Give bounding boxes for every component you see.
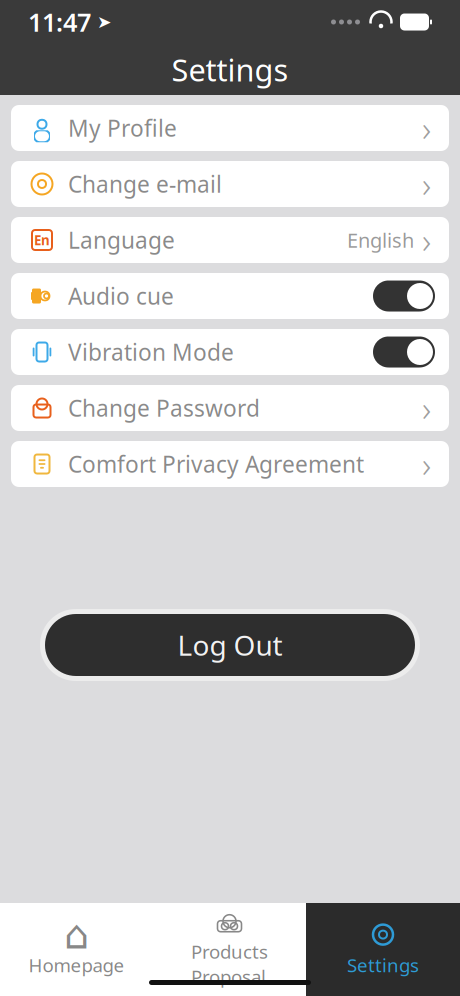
staticText: Comfort Privacy Agreement (68, 449, 364, 479)
button[interactable]: En (11, 217, 449, 263)
staticText: Log Out (177, 626, 282, 664)
button[interactable]: Comfort Privacy Agreement (11, 441, 449, 487)
staticText: Language (68, 225, 175, 255)
staticText: Products Proposal (191, 939, 268, 989)
staticText: › (422, 385, 431, 431)
staticText: My Profile (68, 113, 177, 143)
staticText: En (34, 231, 50, 249)
button[interactable]: Settings (306, 903, 460, 996)
button[interactable]: Change Password (11, 385, 449, 431)
staticText: › (422, 161, 431, 207)
button[interactable]: Log Out (40, 609, 420, 681)
staticText: Settings (347, 953, 419, 977)
button[interactable]: Audio cue (11, 273, 449, 319)
staticText: 11:47 (28, 5, 91, 39)
staticText: ➤ (91, 12, 112, 32)
button[interactable]: ⌂ (0, 903, 153, 996)
button[interactable]: My Profile (11, 105, 449, 151)
staticText: › (422, 441, 431, 487)
staticText: English (347, 227, 414, 253)
staticText: ⌂ (64, 912, 89, 957)
staticText: Audio cue (68, 281, 174, 311)
staticText: Change e-mail (68, 169, 222, 199)
staticText: Settings (171, 49, 288, 90)
staticText: Homepage (28, 953, 124, 977)
staticText: Vibration Mode (68, 337, 234, 367)
staticText: › (422, 105, 431, 151)
button[interactable]: Products Proposal (153, 903, 306, 996)
staticText: › (422, 217, 431, 263)
button[interactable]: Change e-mail (11, 161, 449, 207)
staticText: Change Password (68, 393, 260, 423)
button[interactable]: Vibration Mode (11, 329, 449, 375)
